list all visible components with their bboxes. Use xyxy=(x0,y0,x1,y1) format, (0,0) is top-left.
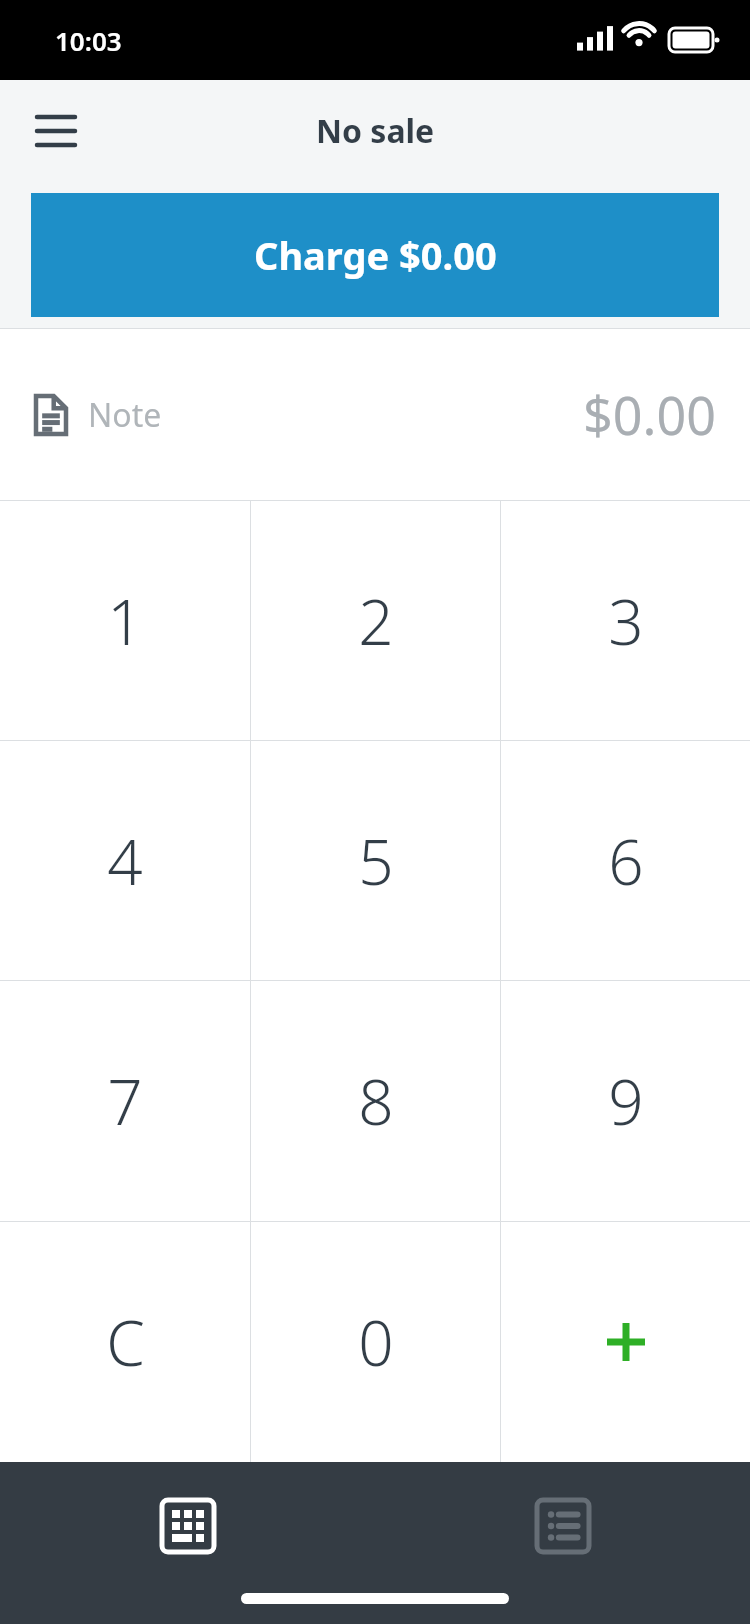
staticText: $0.00 xyxy=(583,379,716,450)
staticText: 10:03 xyxy=(55,23,122,58)
staticText: 1 xyxy=(107,579,143,663)
button[interactable]: 5 xyxy=(251,741,500,980)
staticText: C xyxy=(106,1300,145,1384)
staticText: Note xyxy=(88,393,162,437)
staticText: 7 xyxy=(107,1059,143,1143)
staticText: 3 xyxy=(608,579,644,663)
button[interactable]: 9 xyxy=(501,981,750,1221)
button[interactable]: 8 xyxy=(251,981,500,1221)
button[interactable]: 1 xyxy=(0,501,250,740)
button[interactable]: 6 xyxy=(501,741,750,980)
button[interactable]: Menu xyxy=(28,103,84,159)
button[interactable] xyxy=(501,1222,750,1462)
staticText: 2 xyxy=(358,579,394,663)
button[interactable]: C xyxy=(0,1222,250,1462)
button[interactable]: 0 xyxy=(251,1222,500,1462)
staticText: 4 xyxy=(107,819,143,903)
staticText: 0 xyxy=(358,1300,394,1384)
staticText: Charge $0.00 xyxy=(254,229,497,281)
button[interactable]: 4 xyxy=(0,741,250,980)
button[interactable]: Note xyxy=(0,329,750,500)
button[interactable]: Charge $0.00 xyxy=(31,193,719,317)
button[interactable]: 3 xyxy=(501,501,750,740)
button[interactable]: Transactions xyxy=(375,1486,750,1566)
staticText: 6 xyxy=(608,819,644,903)
staticText: 8 xyxy=(358,1059,394,1143)
staticText: 5 xyxy=(358,819,394,903)
staticText: 9 xyxy=(608,1059,644,1143)
staticText: No sale xyxy=(316,109,435,153)
button[interactable]: 2 xyxy=(251,501,500,740)
button[interactable]: Keypad xyxy=(0,1486,375,1566)
button[interactable]: 7 xyxy=(0,981,250,1221)
